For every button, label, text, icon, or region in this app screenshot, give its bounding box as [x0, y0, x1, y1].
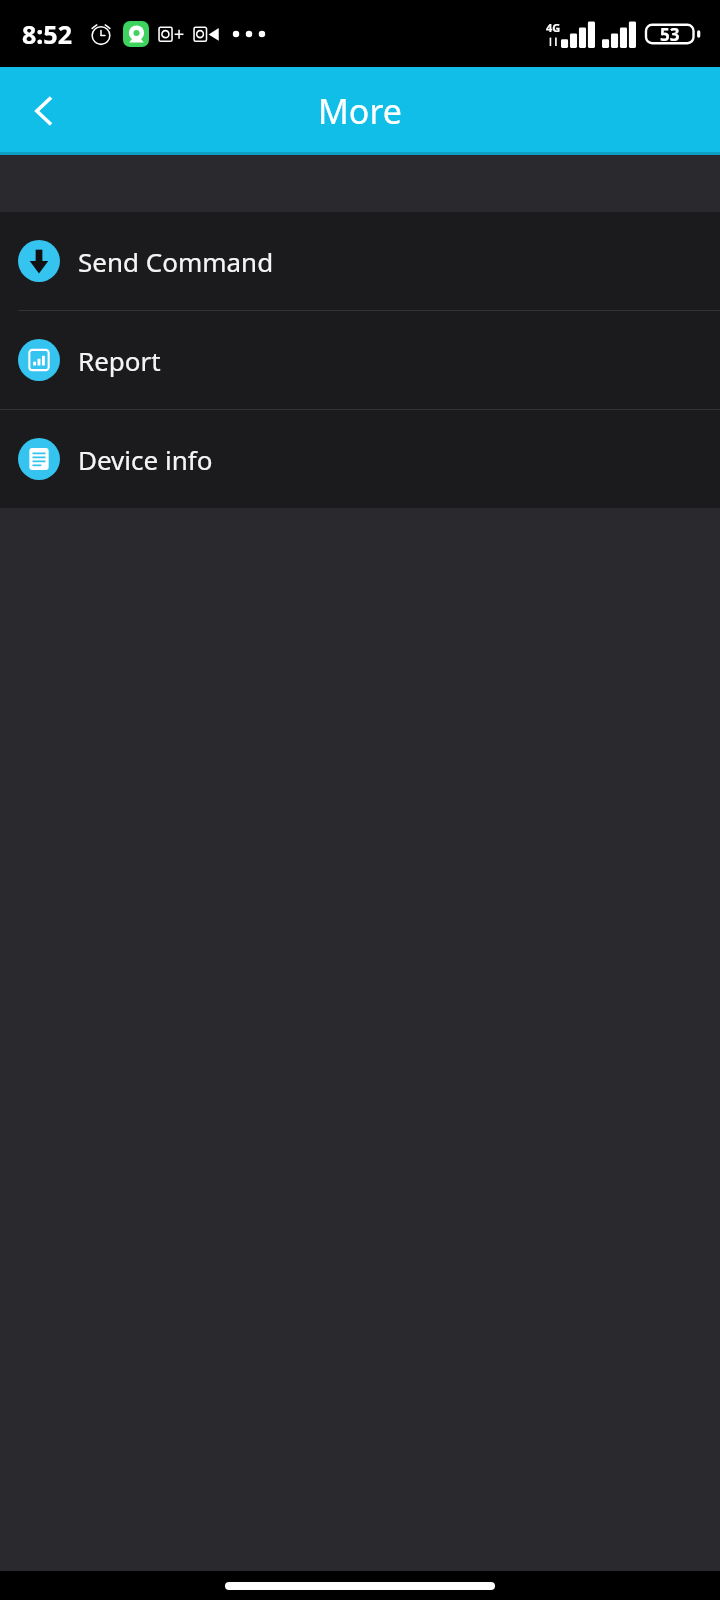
staticText: 8:52: [22, 17, 72, 51]
button[interactable]: Report: [0, 311, 720, 409]
button[interactable]: Device info: [0, 410, 720, 508]
staticText: Send Command: [78, 244, 274, 279]
staticText: Device info: [78, 442, 213, 477]
button[interactable]: Back: [0, 67, 88, 155]
staticText: Report: [78, 343, 161, 378]
staticText: 4G: [546, 20, 561, 35]
staticText: 53: [660, 23, 680, 46]
button[interactable]: Send Command: [0, 212, 720, 310]
staticText: More: [318, 88, 402, 134]
